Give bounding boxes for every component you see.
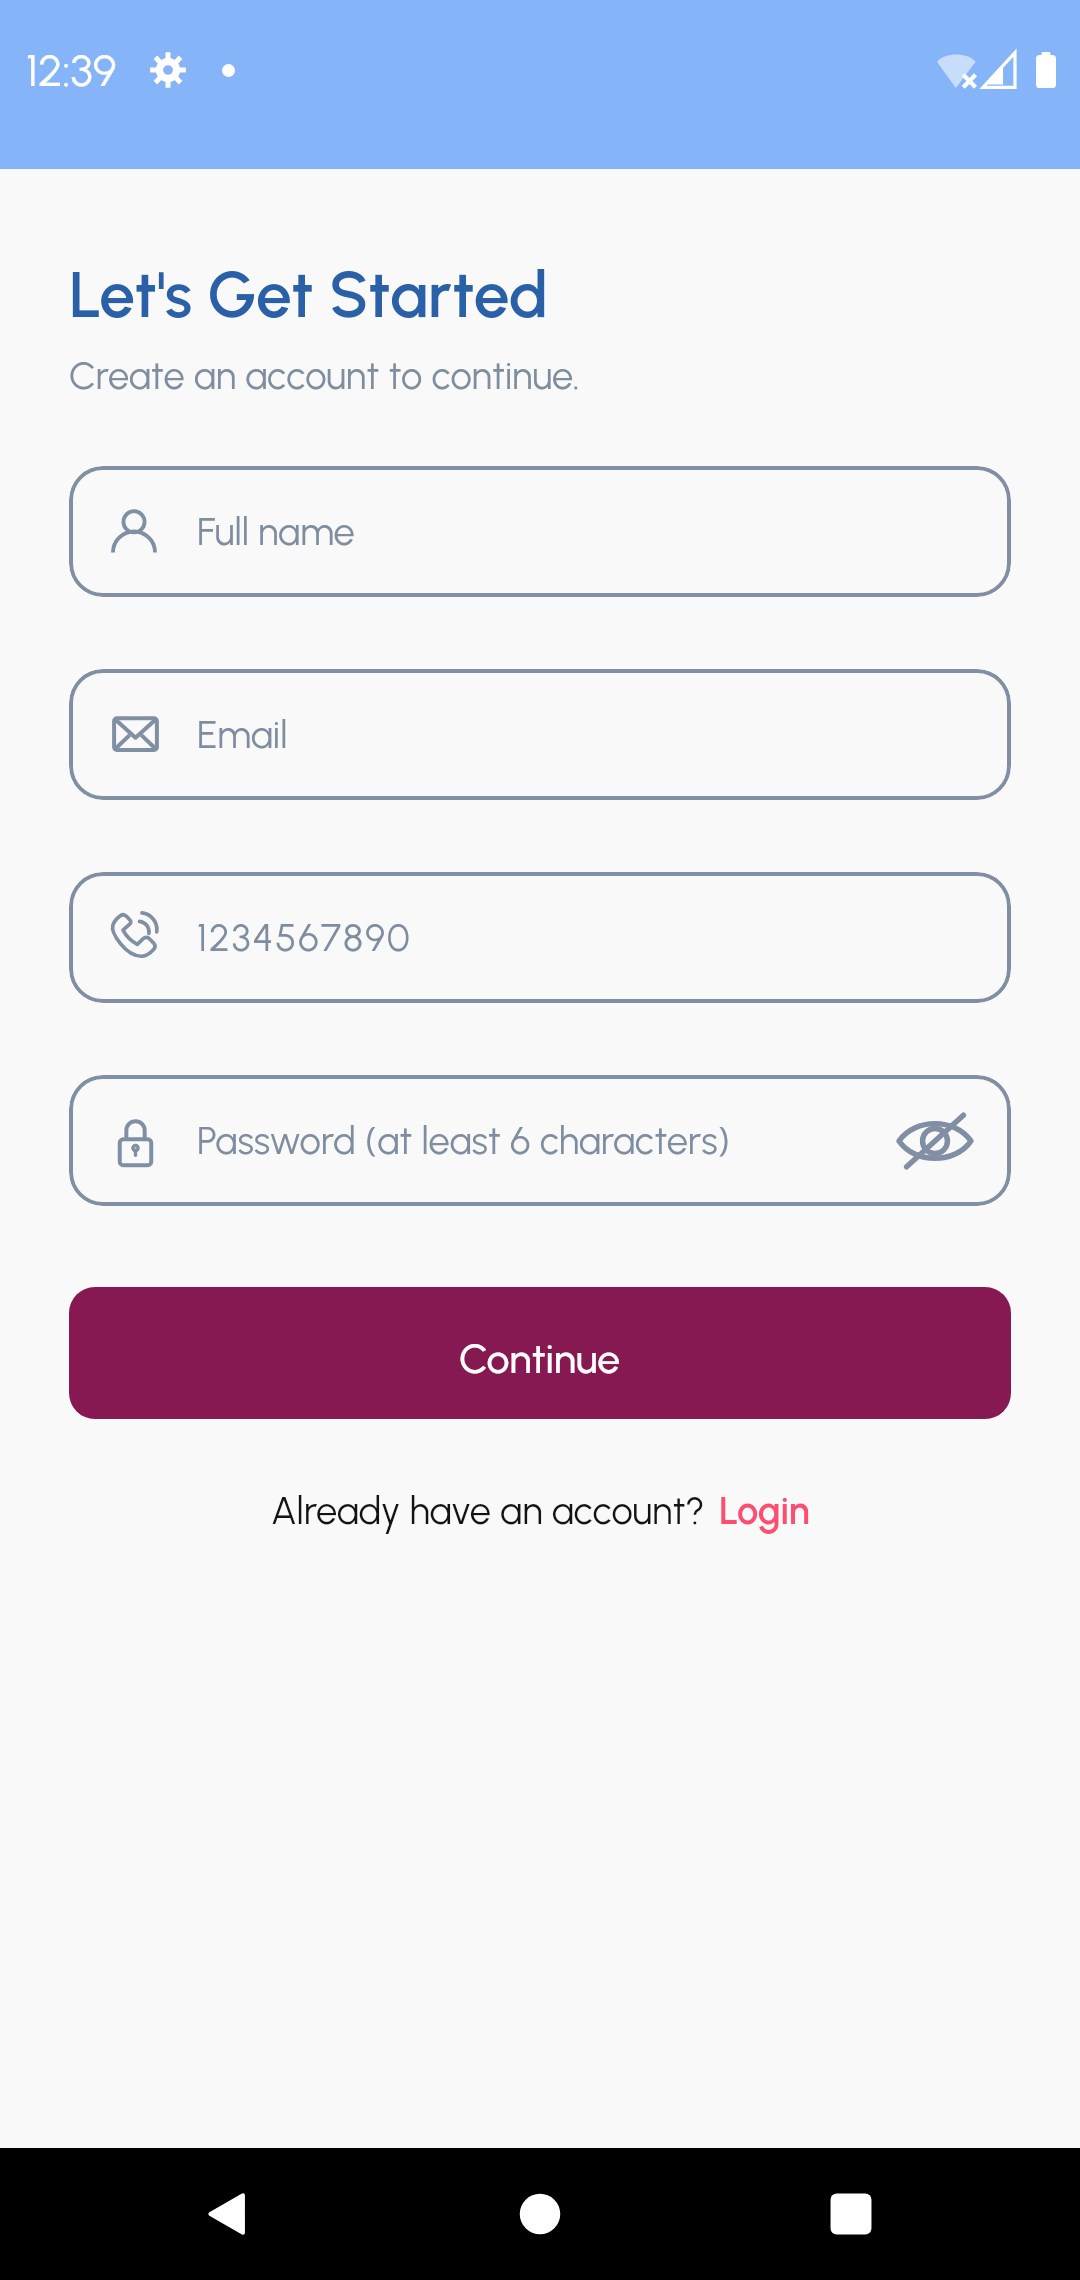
button[interactable]: Login	[719, 1488, 810, 1534]
staticText: 12:39	[26, 43, 117, 97]
button[interactable]: 1234567890	[69, 872, 1011, 1003]
staticText: Let's Get Started	[69, 256, 549, 333]
button[interactable]: Password (at least 6 characters)	[69, 1075, 1011, 1206]
button[interactable]: Full name	[69, 466, 1011, 597]
button[interactable]: Email	[69, 669, 1011, 800]
staticText: Password (at least 6 characters)	[197, 1118, 730, 1164]
staticText: Continue	[459, 1334, 621, 1383]
other: Toggle password visibility	[895, 1112, 975, 1170]
button[interactable]: Continue	[69, 1287, 1011, 1419]
staticText: Already have an account?	[271, 1488, 705, 1534]
staticText: 1234567890	[197, 915, 412, 961]
staticText: Create an account to continue.	[69, 353, 580, 399]
button[interactable]: Back	[121, 2148, 331, 2280]
button[interactable]: Recent apps	[746, 2148, 956, 2280]
staticText: Full name	[197, 509, 355, 555]
button[interactable]: Home	[435, 2148, 645, 2280]
staticText: Login	[719, 1488, 810, 1534]
staticText: Email	[197, 712, 288, 758]
